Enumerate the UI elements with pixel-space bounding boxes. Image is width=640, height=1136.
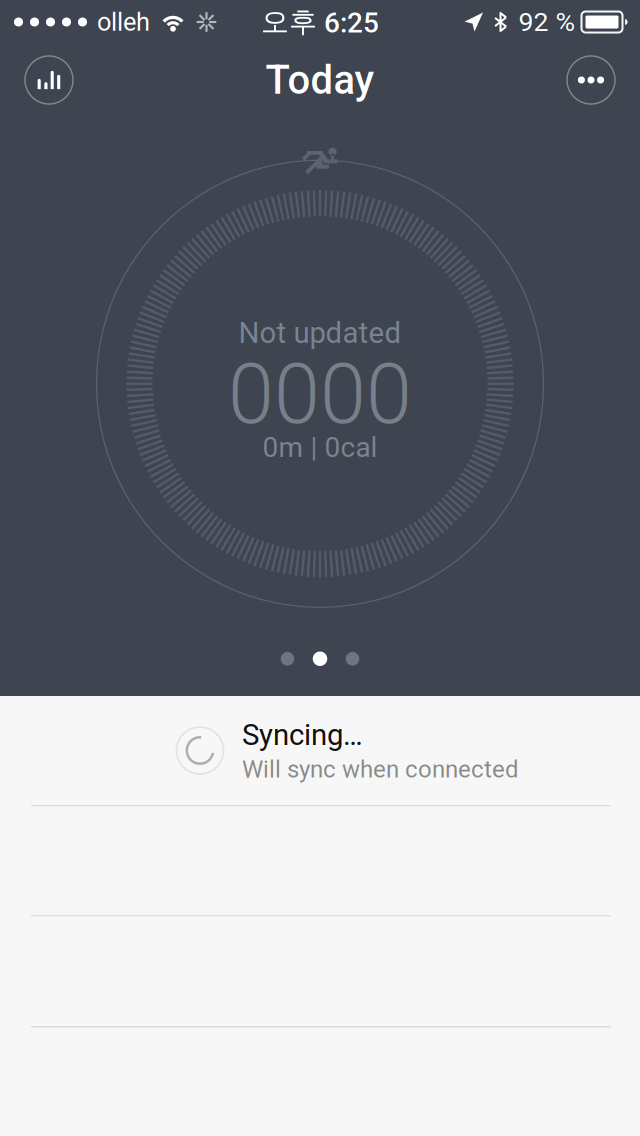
staticText: 92 %: [518, 6, 575, 38]
staticText: Syncing…: [242, 718, 363, 752]
staticText: 0m | 0cal: [262, 431, 377, 464]
staticText: Not updated: [238, 316, 401, 350]
staticText: 오후 6:25: [261, 4, 379, 40]
button[interactable]: More options: [563, 52, 619, 108]
staticText: 0000: [228, 346, 412, 443]
button[interactable]: Statistics: [21, 52, 77, 108]
staticText: olleh: [97, 7, 150, 37]
staticText: Today: [265, 57, 374, 103]
button[interactable]: Syncing…: [0, 696, 640, 805]
staticText: Will sync when connected: [242, 755, 519, 783]
